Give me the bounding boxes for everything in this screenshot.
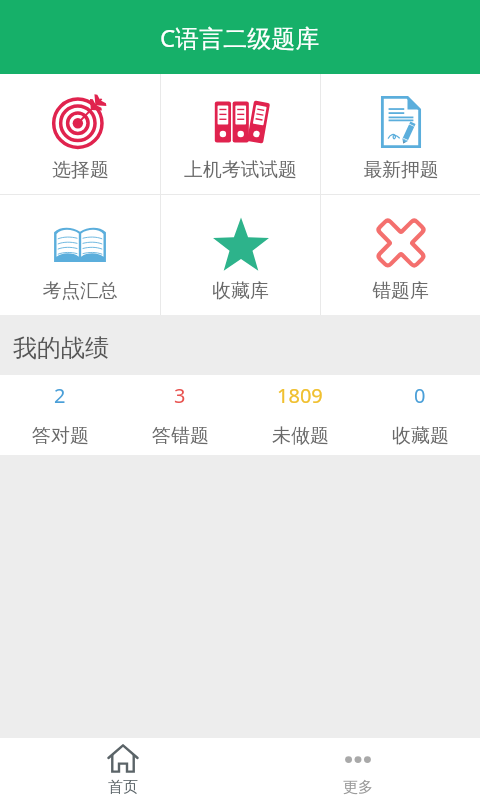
staticText: 首页 [108,778,138,797]
button[interactable]: 考点汇总 [0,195,160,315]
button[interactable]: 3 [120,375,240,455]
button[interactable]: 上机考试试题 [161,74,320,194]
staticText: 1809 [277,382,323,409]
staticText: 我的战绩 [13,333,109,363]
staticText: 选择题 [52,158,109,182]
button[interactable]: 错题库 [321,195,480,315]
staticText: 考点汇总 [42,279,118,303]
staticText: 0 [414,382,426,409]
button[interactable]: 最新押题 [321,74,480,194]
staticText: 3 [174,382,186,409]
staticText: 错题库 [372,279,429,303]
button[interactable]: 2 [0,375,120,455]
staticText: 2 [54,382,66,409]
staticText: 答对题 [32,424,89,448]
staticText: 收藏库 [212,279,269,303]
button[interactable]: 首页 [5,738,240,800]
button[interactable]: 0 [360,375,480,455]
staticText: C语言二级题库 [160,21,320,54]
staticText: 最新押题 [363,158,439,182]
staticText: 收藏题 [392,424,449,448]
staticText: 答错题 [152,424,209,448]
staticText: 更多 [343,778,373,797]
staticText: 未做题 [272,424,329,448]
button[interactable]: 收藏库 [161,195,320,315]
button[interactable]: 1809 [240,375,360,455]
staticText: 上机考试试题 [184,158,297,182]
button[interactable]: 更多 [240,738,475,800]
button[interactable]: 选择题 [0,74,160,194]
